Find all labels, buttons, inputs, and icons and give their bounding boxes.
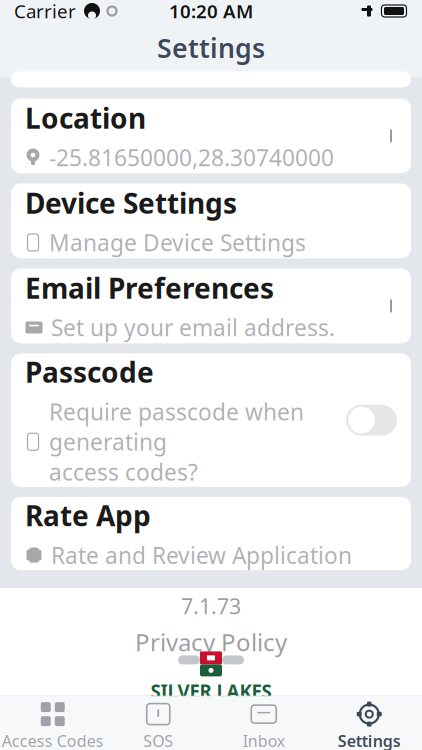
staticText: Settings xyxy=(157,30,265,65)
staticText: Manage Device Settings xyxy=(49,227,306,258)
button[interactable]: Privacy Policy xyxy=(135,620,287,658)
staticText: Set up your email address. xyxy=(51,312,335,343)
staticText: 7.1.73 xyxy=(181,592,241,620)
staticText: -25.81650000,28.30740000 xyxy=(49,142,334,173)
button[interactable]: Settings xyxy=(316,696,422,750)
button[interactable]: Location xyxy=(11,98,411,173)
button[interactable]: Device Settings xyxy=(11,183,411,258)
staticText: 10:20 AM xyxy=(169,0,253,23)
staticText: Carrier xyxy=(14,0,76,23)
staticText: Device Settings xyxy=(25,184,237,221)
staticText: Settings xyxy=(338,730,401,750)
staticText: Passcode xyxy=(25,353,154,391)
staticText: Email Preferences xyxy=(25,269,274,306)
button[interactable]: Email Preferences xyxy=(11,268,411,343)
staticText: Privacy Policy xyxy=(135,626,287,658)
staticText: Rate App xyxy=(25,497,151,534)
button[interactable]: Rate App xyxy=(11,497,411,570)
staticText: SILVER LAKES xyxy=(150,679,271,704)
button[interactable]: Access Codes xyxy=(0,696,105,750)
button[interactable]: SOS xyxy=(105,696,211,750)
button[interactable]: Passcode xyxy=(11,353,411,487)
staticText: Inbox xyxy=(243,730,285,750)
button[interactable]: Inbox xyxy=(211,696,316,750)
staticText: Require passcode when generating access … xyxy=(49,397,304,487)
staticText: Access Codes xyxy=(2,730,104,750)
staticText: Location xyxy=(25,99,146,136)
staticText: Rate and Review Application xyxy=(51,540,352,570)
staticText: SOS xyxy=(143,730,173,750)
staticText: GOLF & WILDLIFE ESTATE xyxy=(164,705,258,715)
